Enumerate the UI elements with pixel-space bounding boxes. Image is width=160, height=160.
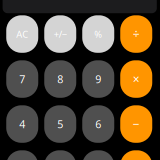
button[interactable]: 2 xyxy=(44,150,76,160)
staticText: 7 xyxy=(19,72,25,86)
staticText: AC xyxy=(16,28,28,40)
button[interactable]: 1 xyxy=(6,150,38,160)
staticText: × xyxy=(133,71,140,87)
button[interactable]: 4 xyxy=(6,105,38,143)
staticText: ÷ xyxy=(133,26,140,42)
staticText: 8 xyxy=(57,72,63,86)
button[interactable]: All clear xyxy=(6,15,38,53)
staticText: % xyxy=(94,28,102,40)
button[interactable]: 8 xyxy=(44,60,76,98)
button[interactable]: Minus xyxy=(120,105,152,143)
staticText: − xyxy=(133,116,140,132)
staticText: 5 xyxy=(57,117,63,131)
button[interactable]: Percent xyxy=(82,15,114,53)
button[interactable]: 7 xyxy=(6,60,38,98)
staticText: +/− xyxy=(54,28,67,40)
button[interactable]: Plus xyxy=(120,150,152,160)
button[interactable]: Plus minus xyxy=(44,15,76,53)
staticText: 9 xyxy=(95,72,101,86)
staticText: 6 xyxy=(95,117,101,131)
button[interactable]: 6 xyxy=(82,105,114,143)
button[interactable]: 3 xyxy=(82,150,114,160)
button[interactable]: Multiply xyxy=(120,60,152,98)
staticText: 4 xyxy=(19,117,25,131)
button[interactable]: Divide xyxy=(120,15,152,53)
button[interactable]: 9 xyxy=(82,60,114,98)
button[interactable]: 5 xyxy=(44,105,76,143)
